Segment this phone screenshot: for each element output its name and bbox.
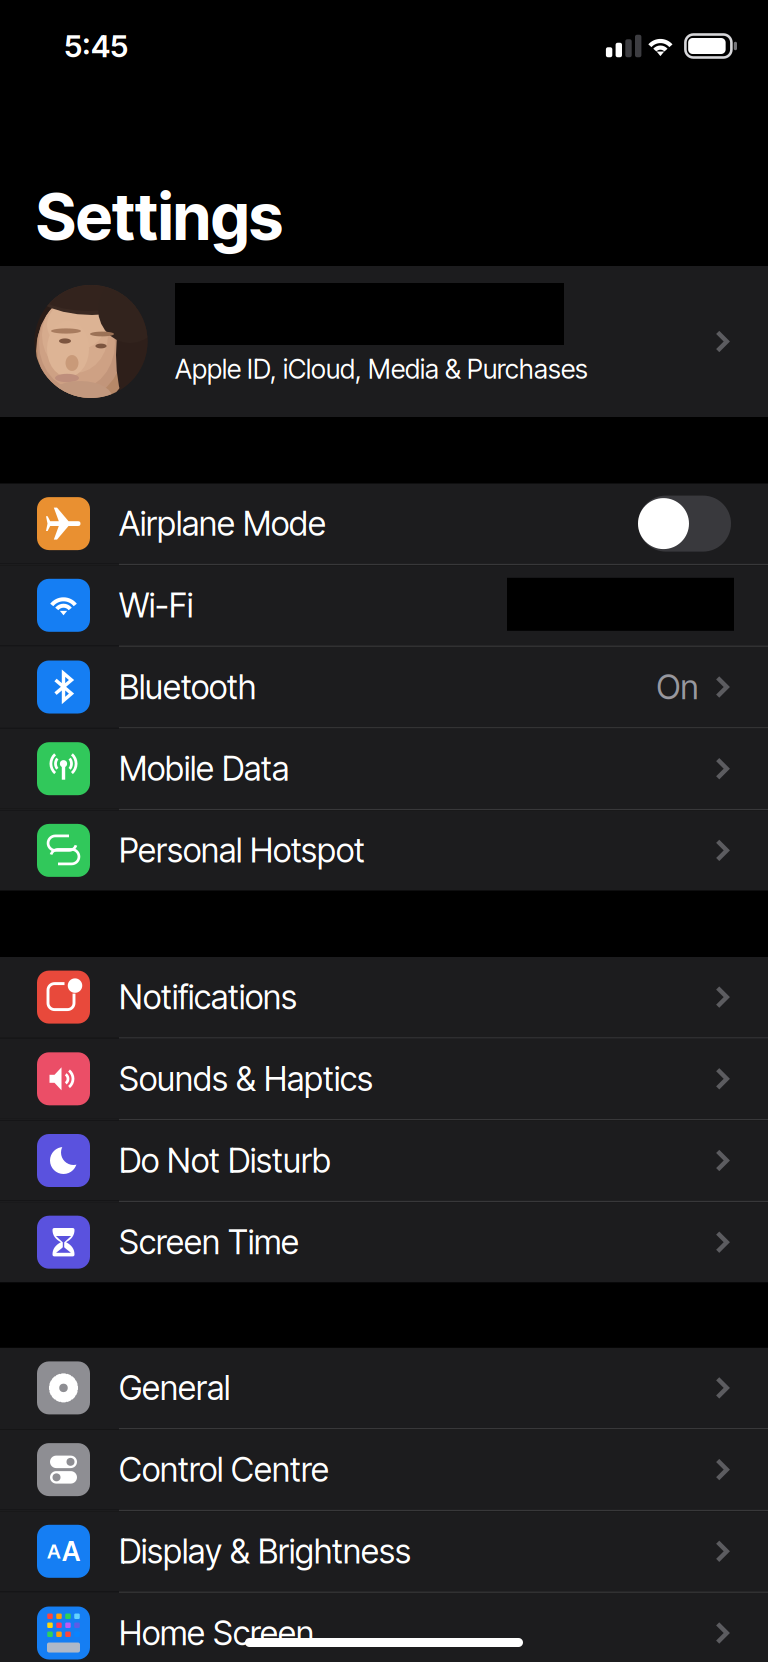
button[interactable]: General (0, 1348, 768, 1428)
staticText: Home Screen (119, 1613, 314, 1653)
button[interactable]: Bluetooth (0, 647, 768, 727)
staticText: Display & Brightness (119, 1531, 411, 1571)
staticText: Wi-Fi (119, 585, 193, 625)
staticText: Settings (36, 178, 283, 255)
button[interactable]: Home Screen (0, 1593, 768, 1662)
button[interactable]: Notifications (0, 957, 768, 1037)
button[interactable]: Personal Hotspot (0, 810, 768, 890)
staticText: Control Centre (119, 1449, 329, 1490)
staticText: Do Not Disturb (119, 1140, 331, 1181)
staticText: 5:45 (64, 27, 128, 64)
button[interactable]: Sounds & Haptics (0, 1039, 768, 1119)
button[interactable]: A (0, 1511, 768, 1591)
button[interactable]: Control Centre (0, 1429, 768, 1510)
button[interactable]: Mobile Data (0, 729, 768, 809)
staticText: General (119, 1368, 230, 1408)
staticText: Personal Hotspot (119, 830, 365, 870)
staticText: Bluetooth (119, 667, 256, 707)
staticText: Screen Time (119, 1222, 299, 1262)
button[interactable]: Screen Time (0, 1202, 768, 1282)
staticText: Mobile Data (119, 748, 289, 789)
staticText: On (656, 667, 698, 707)
staticText: Sounds & Haptics (119, 1059, 373, 1099)
staticText: Apple ID, iCloud, Media & Purchases (175, 353, 588, 385)
button[interactable]: Apple ID, iCloud, Media & Purchases (0, 266, 768, 417)
staticText: A (62, 1535, 80, 1567)
staticText: A (47, 1539, 61, 1563)
button[interactable]: Wi-Fi (0, 565, 768, 645)
button[interactable]: Do Not Disturb (0, 1120, 768, 1201)
button[interactable]: Airplane Mode (0, 483, 768, 564)
staticText: Notifications (119, 977, 297, 1017)
staticText: Airplane Mode (119, 503, 326, 544)
